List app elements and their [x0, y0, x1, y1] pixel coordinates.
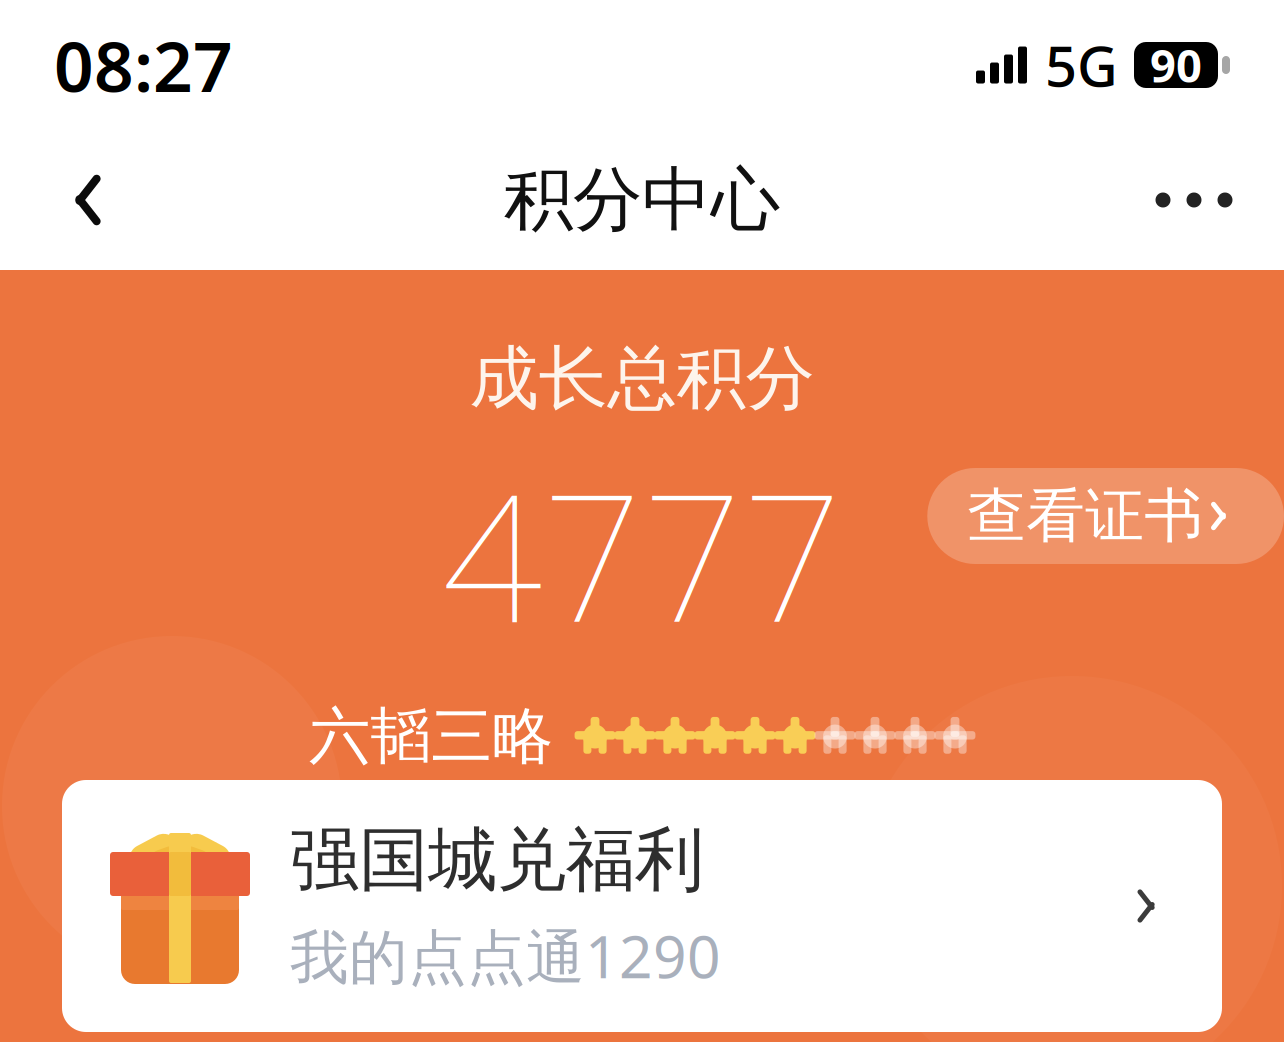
- staticText: 查看证书: [967, 480, 1203, 552]
- button[interactable]: 对违规获取积分的行为处罚说明: [215, 800, 1069, 866]
- staticText: 08:27: [54, 19, 233, 111]
- button[interactable]: 强国城兑福利: [62, 780, 1222, 1032]
- button[interactable]: 更多: [1134, 145, 1254, 255]
- staticText: 成长总积分: [469, 336, 814, 421]
- staticText: 积分中心: [504, 157, 780, 243]
- staticText: 对违规获取积分的行为处罚说明: [293, 800, 1035, 866]
- staticText: 90: [1150, 35, 1202, 95]
- staticText: 5G: [1045, 28, 1118, 102]
- staticText: 我的点点通1290: [290, 917, 721, 994]
- staticText: 4777: [442, 437, 842, 671]
- button[interactable]: 返回: [30, 145, 130, 255]
- button[interactable]: 查看证书: [927, 468, 1284, 564]
- staticText: 六韬三略: [309, 699, 553, 774]
- staticText: 强国城兑福利: [290, 817, 704, 903]
